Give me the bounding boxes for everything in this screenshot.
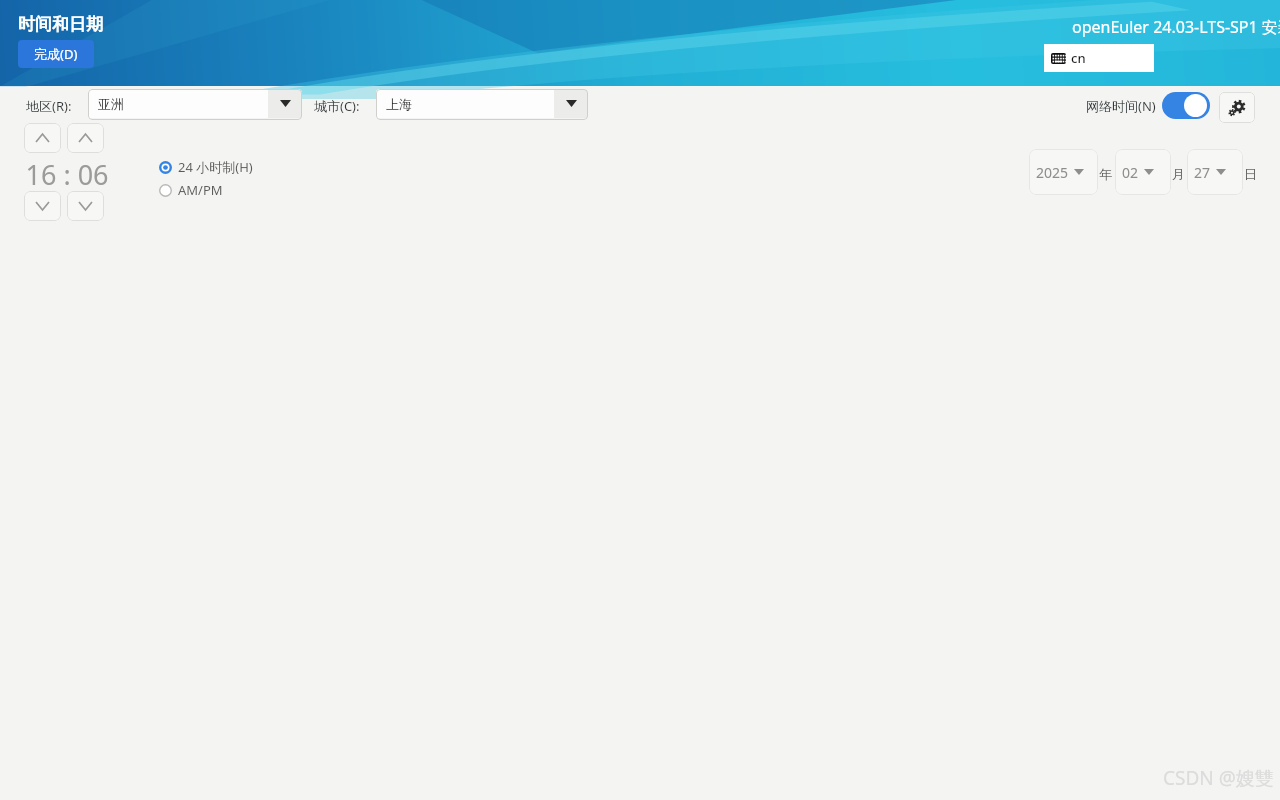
staticText: CSDN @嫂雙 — [1163, 765, 1274, 791]
button[interactable]: 02 — [1115, 149, 1171, 195]
staticText: 亚洲 — [98, 96, 124, 112]
staticText: cn — [1071, 49, 1086, 67]
staticText: 上海 — [386, 96, 412, 112]
button[interactable]: 上海 — [376, 89, 588, 120]
button[interactable]: Decrease — [67, 191, 104, 221]
button[interactable]: Increase — [24, 123, 61, 153]
staticText: 年 — [1099, 166, 1112, 182]
staticText: 地区(R): — [26, 97, 72, 115]
staticText: 2025 — [1036, 163, 1069, 182]
staticText: 27 — [1194, 163, 1211, 182]
button[interactable]: 完成(D) — [18, 40, 94, 68]
button[interactable]: Keyboard layout — [1044, 44, 1154, 72]
staticText: 完成(D) — [34, 45, 78, 63]
staticText: 02 — [1122, 163, 1139, 182]
button[interactable]: Network time toggle — [1162, 92, 1210, 119]
button[interactable]: 27 — [1187, 149, 1243, 195]
button[interactable]: Decrease — [24, 191, 61, 221]
staticText: 日 — [1244, 166, 1257, 182]
button[interactable]: 亚洲 — [88, 89, 302, 120]
staticText: 网络时间(N) — [1086, 97, 1156, 115]
staticText: openEuler 24.03-LTS-SP1 安装 — [1072, 16, 1280, 38]
staticText: 城市(C): — [314, 97, 360, 115]
button[interactable]: Increase — [67, 123, 104, 153]
button[interactable]: Settings — [1219, 92, 1255, 123]
staticText: 24 小时制(H) — [178, 158, 253, 176]
button[interactable]: AM/PM — [157, 179, 225, 201]
staticText: AM/PM — [178, 181, 223, 199]
button[interactable]: 2025 — [1029, 149, 1098, 195]
staticText: 月 — [1172, 166, 1185, 182]
staticText: 16 : 06 — [24, 156, 110, 193]
button[interactable]: 24 小时制(H) — [157, 156, 255, 178]
other: Keyboard layout — [1051, 53, 1066, 64]
staticText: 时间和日期 — [18, 14, 103, 35]
